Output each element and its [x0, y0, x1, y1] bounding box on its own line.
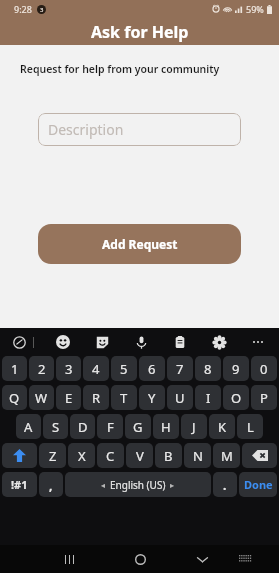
staticText: U [175, 389, 185, 407]
button[interactable]: A [16, 414, 41, 439]
button[interactable]: More options [247, 331, 269, 353]
button[interactable]: T [111, 385, 137, 410]
staticText: ▸ [170, 481, 175, 490]
button[interactable]: Add Request [38, 224, 241, 264]
staticText: I [206, 389, 211, 407]
staticText: R [92, 389, 101, 407]
button[interactable]: . [213, 472, 237, 497]
staticText: Description [48, 120, 124, 139]
staticText: 5 [120, 360, 128, 378]
button[interactable]: , [39, 472, 63, 497]
button[interactable]: J [181, 414, 207, 439]
button[interactable]: R [83, 385, 109, 410]
staticText: B [164, 447, 173, 465]
staticText: Ask for Help [91, 21, 189, 43]
button[interactable]: E [56, 385, 81, 410]
staticText: D [78, 418, 88, 436]
staticText: 9:28 [14, 3, 32, 15]
staticText: Done [244, 477, 273, 492]
button[interactable]: Description [38, 113, 241, 146]
button[interactable]: Done [239, 472, 277, 497]
button[interactable]: Toolbar [8, 331, 30, 353]
button[interactable]: S [43, 414, 68, 439]
button[interactable]: X [68, 443, 95, 468]
button[interactable]: 6 [139, 356, 165, 381]
button[interactable]: 4 [83, 356, 109, 381]
staticText: Q [9, 389, 20, 407]
staticText: L [247, 418, 254, 436]
staticText: 59% [246, 3, 264, 15]
button[interactable]: Shift [2, 443, 37, 468]
button[interactable]: Stickers [91, 331, 113, 353]
button[interactable]: V [126, 443, 153, 468]
staticText: ◂ [101, 481, 106, 490]
staticText: H [161, 418, 171, 436]
staticText: Z [49, 447, 57, 465]
button[interactable]: Q [2, 385, 27, 410]
button[interactable]: B [155, 443, 182, 468]
button[interactable]: Switch keyboard [233, 547, 257, 571]
staticText: C [106, 447, 115, 465]
button[interactable]: C [97, 443, 124, 468]
staticText: . [223, 477, 227, 493]
button[interactable]: N [184, 443, 211, 468]
button[interactable]: Recents [57, 547, 81, 571]
button[interactable]: 5 [111, 356, 137, 381]
button[interactable]: D [70, 414, 95, 439]
button[interactable]: Hide keyboard [190, 547, 214, 571]
staticText: 3 [40, 6, 44, 14]
button[interactable]: Settings [208, 331, 230, 353]
button[interactable]: Home [128, 547, 152, 571]
button[interactable]: K [209, 414, 235, 439]
staticText: 8 [204, 360, 212, 378]
staticText: Add Request [102, 236, 178, 252]
staticText: 2 [38, 360, 46, 378]
button[interactable]: P [251, 385, 277, 410]
button[interactable]: 9 [223, 356, 249, 381]
button[interactable]: U [167, 385, 193, 410]
button[interactable]: F [97, 414, 123, 439]
button[interactable]: Z [39, 443, 66, 468]
button[interactable]: Emoji [52, 331, 74, 353]
button[interactable]: Y [139, 385, 165, 410]
button[interactable]: 2 [29, 356, 54, 381]
button[interactable]: Backspace [242, 443, 277, 468]
button[interactable]: 7 [167, 356, 193, 381]
staticText: 0 [260, 360, 268, 378]
staticText: 1 [11, 360, 19, 378]
button[interactable]: Voice input [130, 331, 152, 353]
button[interactable]: I [195, 385, 221, 410]
button[interactable]: 8 [195, 356, 221, 381]
staticText: W [35, 389, 48, 407]
button[interactable]: 1 [2, 356, 27, 381]
staticText: 4 [92, 360, 100, 378]
button[interactable]: 3 [56, 356, 81, 381]
staticText: S [52, 418, 60, 436]
staticText: G [133, 418, 143, 436]
button[interactable]: O [223, 385, 249, 410]
staticText: 3 [65, 360, 73, 378]
staticText: M [221, 447, 233, 465]
button[interactable]: W [29, 385, 54, 410]
staticText: 9 [232, 360, 240, 378]
staticText: 6 [148, 360, 156, 378]
button[interactable]: G [125, 414, 151, 439]
button[interactable]: 0 [251, 356, 277, 381]
button[interactable]: !#1 [2, 472, 37, 497]
staticText: F [107, 418, 114, 436]
staticText: N [193, 447, 203, 465]
button[interactable]: M [213, 443, 240, 468]
staticText: Request for help from your community [20, 62, 220, 76]
button[interactable]: L [237, 414, 263, 439]
staticText: X [78, 447, 86, 465]
staticText: V [136, 447, 144, 465]
button[interactable]: H [153, 414, 179, 439]
staticText: English (US) [110, 478, 166, 492]
staticText: K [218, 418, 227, 436]
staticText: P [260, 389, 268, 407]
button[interactable]: ◂ [65, 472, 211, 497]
staticText: O [231, 389, 242, 407]
staticText: !#1 [11, 477, 28, 492]
button[interactable]: Clipboard [169, 331, 191, 353]
staticText: T [120, 389, 128, 407]
